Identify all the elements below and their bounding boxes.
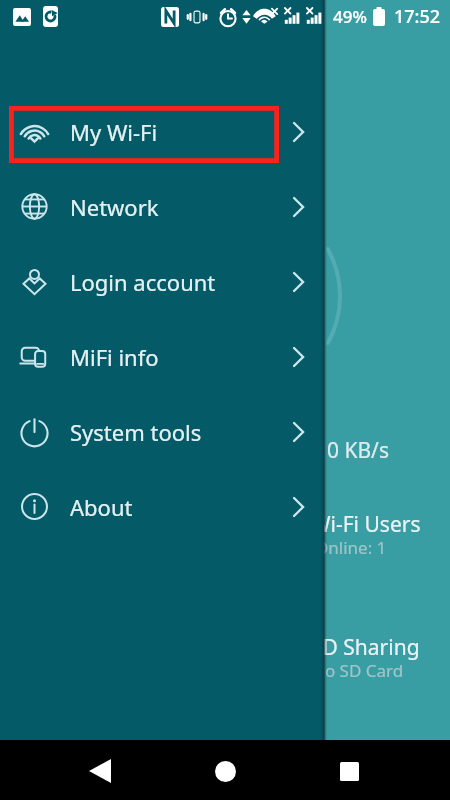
staticText: Network bbox=[70, 192, 159, 222]
staticText: MiFi info bbox=[70, 342, 159, 372]
staticText: Online: 1 bbox=[315, 536, 387, 559]
button[interactable]: Login account bbox=[0, 244, 324, 319]
button[interactable]: Network bbox=[0, 169, 324, 244]
staticText: Wi-Fi Users bbox=[311, 510, 421, 539]
button[interactable]: Back bbox=[78, 749, 122, 793]
staticText: 49% bbox=[333, 5, 367, 28]
staticText: 17:52 bbox=[394, 4, 441, 29]
button[interactable]: About bbox=[0, 469, 324, 544]
button[interactable]: System tools bbox=[0, 394, 324, 469]
button[interactable]: Close navigation drawer bbox=[324, 0, 450, 740]
staticText: About bbox=[70, 492, 133, 522]
staticText: My Wi-Fi bbox=[70, 117, 158, 147]
staticText: System tools bbox=[70, 417, 202, 447]
staticText: No SD Card bbox=[312, 659, 404, 682]
button[interactable]: Recents bbox=[327, 749, 371, 793]
staticText: 0 KB/s bbox=[327, 436, 389, 465]
button[interactable]: Home bbox=[203, 749, 247, 793]
button[interactable]: My Wi-Fi bbox=[0, 94, 324, 169]
staticText: SD Sharing bbox=[311, 633, 420, 662]
button[interactable]: MiFi info bbox=[0, 319, 324, 394]
staticText: Login account bbox=[70, 267, 216, 297]
